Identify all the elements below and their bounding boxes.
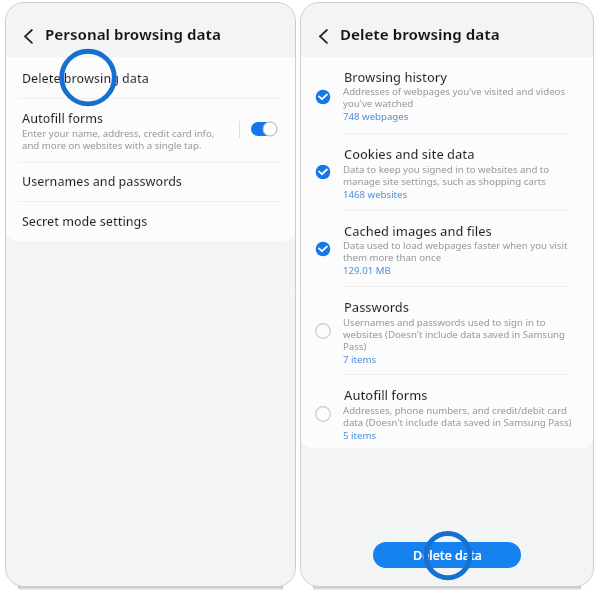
button[interactable]: Navigate up xyxy=(312,21,335,50)
button[interactable]: Autofill forms xyxy=(5,98,296,160)
staticText: Usernames and passwords xyxy=(22,173,182,190)
staticText: Data used to load webpages faster when y… xyxy=(343,239,568,264)
staticText: Usernames and passwords used to sign in … xyxy=(343,316,565,353)
staticText: Addresses of webpages you've visited and… xyxy=(343,85,566,110)
button[interactable]: Autofill forms switch xyxy=(251,122,277,136)
staticText: Cookies and site data xyxy=(344,145,475,162)
button[interactable]: Autofill forms xyxy=(300,374,594,448)
staticText: Enter your name, address, credit card in… xyxy=(22,127,215,152)
staticText: Autofill forms xyxy=(344,386,428,403)
button[interactable]: Browsing history xyxy=(300,57,594,133)
staticText: Browsing history xyxy=(344,68,447,85)
staticText: Delete data xyxy=(413,547,482,564)
button[interactable]: Passwords xyxy=(300,285,594,374)
staticText: Cached images and files xyxy=(344,222,492,239)
staticText: Autofill forms xyxy=(22,110,104,127)
button[interactable]: Delete browsing data xyxy=(5,57,296,98)
button[interactable]: Navigate up xyxy=(17,21,40,50)
staticText: Data to keep you signed in to websites a… xyxy=(343,163,550,188)
staticText: Delete browsing data xyxy=(22,70,149,87)
button[interactable]: Usernames and passwords xyxy=(5,162,296,201)
staticText: Addresses, phone numbers, and credit/deb… xyxy=(343,404,572,429)
staticText: 748 webpages xyxy=(343,110,409,123)
button[interactable]: Cached images and files xyxy=(300,209,594,285)
staticText: Passwords xyxy=(344,298,410,315)
button[interactable]: Delete data xyxy=(373,542,521,568)
staticText: 7 items xyxy=(343,353,377,366)
button[interactable]: Secret mode settings xyxy=(5,201,296,241)
staticText: 129.01 MB xyxy=(343,264,391,277)
staticText: Personal browsing data xyxy=(45,24,221,44)
button[interactable]: Cookies and site data xyxy=(300,133,594,209)
staticText: 5 items xyxy=(343,429,377,442)
staticText: Delete browsing data xyxy=(340,24,500,44)
staticText: Secret mode settings xyxy=(22,213,148,230)
staticText: 1468 websites xyxy=(343,188,408,201)
